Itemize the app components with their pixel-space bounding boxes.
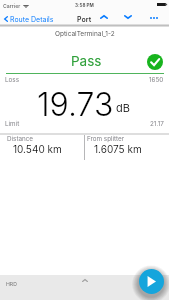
- staticText: Carrier: [3, 3, 21, 9]
- button[interactable]: From splitter: [85, 135, 169, 160]
- staticText: OpticalTerminal_1-2: [55, 30, 115, 38]
- staticText: 1.6075 km: [94, 143, 142, 155]
- staticText: 3:58 PM: [75, 3, 94, 9]
- staticText: dB: [116, 101, 130, 114]
- button[interactable]: Previous port: [97, 12, 111, 26]
- button[interactable]: HRD: [4, 279, 19, 289]
- staticText: Limit: [5, 120, 20, 128]
- staticText: From splitter: [87, 135, 125, 143]
- staticText: Distance: [7, 135, 34, 143]
- button[interactable]: Start test: [139, 269, 164, 294]
- staticText: Pass: [71, 53, 102, 69]
- staticText: Route Details: [10, 15, 54, 23]
- staticText: 1650: [149, 76, 164, 84]
- staticText: 19.73: [37, 85, 114, 124]
- button[interactable]: Expand panel: [76, 275, 94, 286]
- staticText: 21.17: [150, 120, 164, 128]
- button[interactable]: Route Details: [2, 12, 57, 26]
- button[interactable]: Next port: [121, 12, 135, 26]
- staticText: HRD: [6, 281, 17, 287]
- button[interactable]: Distance: [0, 135, 84, 160]
- staticText: 10.540 km: [13, 143, 62, 155]
- staticText: Port: [77, 15, 92, 23]
- staticText: Loss: [5, 76, 19, 84]
- button[interactable]: More options: [148, 12, 160, 26]
